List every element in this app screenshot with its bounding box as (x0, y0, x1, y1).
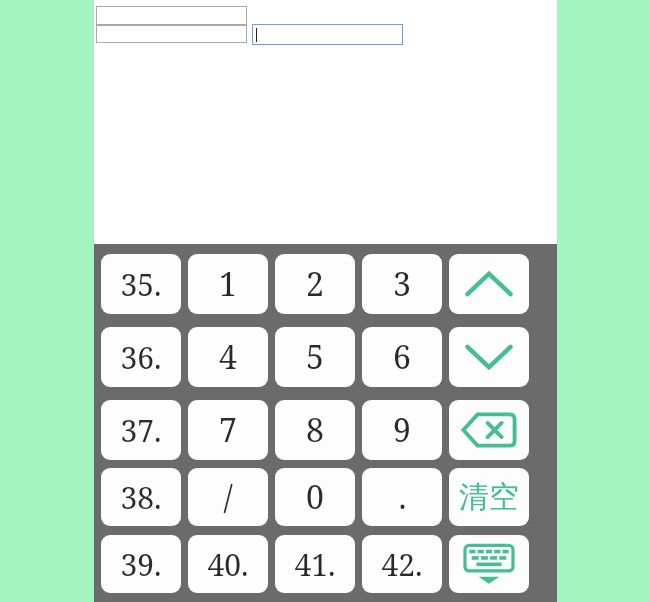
staticText: 3 (393, 262, 411, 306)
button[interactable]: 清空 (449, 468, 529, 526)
staticText: 0 (306, 475, 324, 519)
staticText: 41. (294, 544, 336, 585)
button[interactable]: 37. (101, 400, 181, 460)
button[interactable]: 8 (275, 400, 355, 460)
button[interactable]: 39. (101, 535, 181, 593)
button[interactable]: 0 (275, 468, 355, 526)
button[interactable]: . (362, 468, 442, 526)
staticText: 4 (219, 335, 237, 379)
button[interactable]: 2 (275, 254, 355, 314)
button[interactable]: Previous (449, 254, 529, 314)
staticText: 清空 (459, 478, 519, 516)
button[interactable]: 35. (101, 254, 181, 314)
button[interactable] (253, 25, 402, 44)
button[interactable]: Hide keyboard (449, 535, 529, 593)
button[interactable]: 7 (188, 400, 268, 460)
button[interactable]: 36. (101, 327, 181, 387)
button[interactable]: 40. (188, 535, 268, 593)
staticText: 6 (393, 335, 411, 379)
button[interactable]: 1 (188, 254, 268, 314)
staticText: 9 (393, 408, 411, 452)
staticText: 5 (306, 335, 324, 379)
button[interactable]: 9 (362, 400, 442, 460)
staticText: 39. (120, 544, 162, 585)
staticText: 1 (219, 262, 237, 306)
staticText: 8 (306, 408, 324, 452)
button[interactable]: 41. (275, 535, 355, 593)
staticText: 37. (120, 410, 162, 451)
staticText: 40. (207, 544, 249, 585)
button[interactable]: 3 (362, 254, 442, 314)
staticText: / (223, 475, 233, 519)
staticText: . (398, 475, 407, 519)
staticText: 2 (306, 262, 324, 306)
button[interactable]: Backspace (449, 400, 529, 460)
staticText: 35. (120, 264, 162, 305)
staticText: 38. (120, 477, 162, 518)
staticText: 36. (120, 337, 162, 378)
staticText: 7 (219, 408, 237, 452)
button[interactable]: / (188, 468, 268, 526)
button[interactable]: 4 (188, 327, 268, 387)
button[interactable]: 42. (362, 535, 442, 593)
button[interactable]: Next (449, 327, 529, 387)
button[interactable]: 38. (101, 468, 181, 526)
button[interactable]: 6 (362, 327, 442, 387)
staticText: 42. (381, 544, 423, 585)
button[interactable]: 5 (275, 327, 355, 387)
